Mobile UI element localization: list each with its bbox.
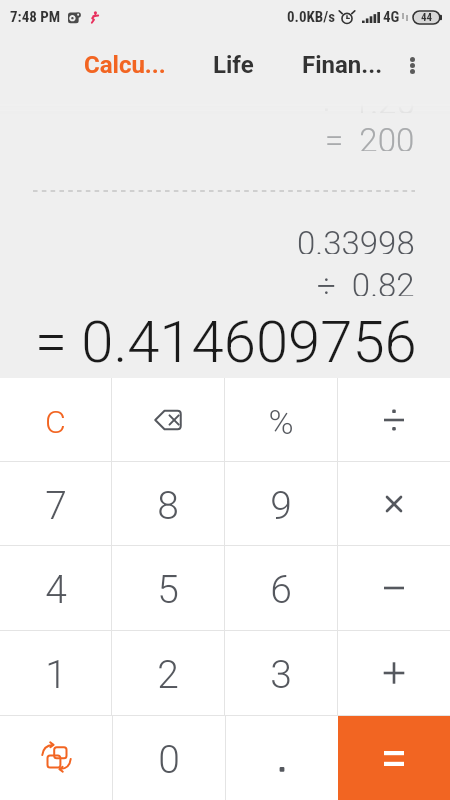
staticText: 1 bbox=[45, 652, 67, 698]
button[interactable]: 3 bbox=[225, 631, 337, 715]
button[interactable]: 6 bbox=[225, 546, 337, 630]
button[interactable]: Clear last entry bbox=[112, 378, 224, 461]
staticText: 5 bbox=[157, 567, 179, 613]
staticText: 7:48 PM bbox=[10, 8, 61, 26]
button[interactable]: Life bbox=[179, 38, 288, 92]
button[interactable]: 2 bbox=[112, 631, 224, 715]
staticText: = 200 bbox=[325, 121, 415, 151]
staticText: 44 bbox=[421, 11, 433, 24]
staticText: 0.33998 bbox=[297, 224, 415, 254]
staticText: 6 bbox=[270, 567, 292, 613]
button[interactable]: 8 bbox=[112, 462, 224, 545]
button[interactable]: More options bbox=[397, 38, 450, 92]
staticText: = 0.414609756 bbox=[35, 308, 417, 368]
staticText: Life bbox=[213, 51, 254, 79]
staticText: 0 bbox=[158, 737, 180, 783]
button[interactable]: 7 bbox=[0, 462, 111, 545]
button[interactable]: Calcu... bbox=[70, 38, 179, 92]
staticText: % bbox=[268, 402, 294, 442]
button[interactable]: C bbox=[0, 378, 111, 461]
button[interactable]: 5 bbox=[112, 546, 224, 630]
button[interactable]: Minus bbox=[338, 546, 450, 630]
staticText: 9 bbox=[270, 483, 292, 529]
staticText: 8 bbox=[157, 483, 179, 529]
button[interactable]: Unit converter bbox=[0, 716, 112, 800]
staticText: 7 bbox=[45, 483, 67, 529]
button[interactable]: Plus bbox=[338, 631, 450, 715]
staticText: Calcu... bbox=[84, 51, 166, 79]
button[interactable]: 9 bbox=[225, 462, 337, 545]
button[interactable]: Divide bbox=[338, 378, 450, 461]
button[interactable]: Equals bbox=[338, 716, 450, 800]
button[interactable]: 4 bbox=[0, 546, 111, 630]
button[interactable]: 1 bbox=[0, 631, 111, 715]
staticText: ÷ 0.82 bbox=[317, 266, 415, 296]
staticText: 4 bbox=[45, 567, 67, 613]
button[interactable]: % bbox=[225, 378, 337, 461]
button[interactable]: Finan... bbox=[288, 38, 397, 92]
button[interactable]: Decimal point bbox=[226, 716, 338, 800]
staticText: 0.0KB/s bbox=[287, 8, 336, 26]
staticText: C bbox=[45, 403, 66, 441]
staticText: 4G bbox=[383, 8, 400, 26]
staticText: 3 bbox=[270, 652, 292, 698]
staticText: 2 bbox=[157, 652, 179, 698]
button[interactable]: Multiply bbox=[338, 462, 450, 545]
staticText: Finan... bbox=[302, 51, 383, 79]
button[interactable]: 0 bbox=[113, 716, 225, 800]
